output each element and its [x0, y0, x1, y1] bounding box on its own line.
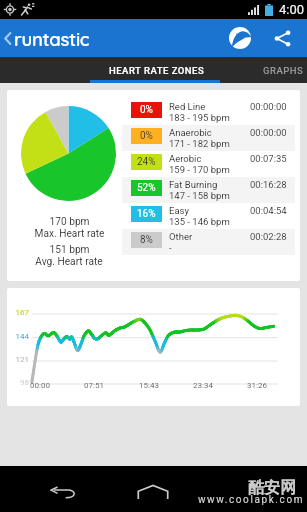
staticText: 16% — [137, 208, 156, 220]
staticText: 159 - 170 bpm — [169, 164, 230, 175]
button[interactable]: Back — [3, 27, 90, 50]
staticText: 00:00:00 — [250, 127, 287, 138]
staticText: 8% — [140, 234, 153, 246]
staticText: 0% — [140, 130, 153, 142]
staticText: 00:00 — [30, 381, 50, 390]
staticText: 00:16:28 — [250, 179, 287, 190]
staticText: 171 - 182 bpm — [169, 138, 230, 149]
staticText: 135 - 146 bpm — [169, 216, 230, 227]
staticText: 98 — [12, 378, 29, 387]
staticText: 15:43 — [139, 381, 159, 390]
staticText: runtastic — [14, 27, 90, 50]
button[interactable]: Home — [133, 480, 173, 504]
staticText: 144 — [12, 332, 29, 341]
staticText: 31:26 — [247, 381, 267, 390]
staticText: 00:04:54 — [250, 205, 287, 216]
staticText: 52% — [137, 182, 156, 194]
staticText: Easy — [169, 205, 189, 216]
staticText: 00:00:00 — [250, 101, 287, 112]
staticText: 0% — [140, 104, 153, 116]
staticText: 170 bpm — [49, 216, 90, 228]
staticText: 167 — [12, 308, 29, 317]
button[interactable]: 0% — [122, 125, 295, 151]
button[interactable]: 16% — [122, 203, 295, 229]
button[interactable]: GRAPHS — [220, 57, 307, 83]
staticText: 4:00 — [279, 2, 305, 17]
button[interactable]: 52% — [122, 177, 295, 203]
staticText: - — [169, 242, 172, 253]
button[interactable]: HEART RATE ZONES — [90, 57, 220, 83]
staticText: GRAPHS — [263, 65, 304, 76]
other: Back — [3, 30, 12, 47]
staticText: 183 - 195 bpm — [169, 112, 230, 123]
button[interactable]: Back — [43, 480, 83, 504]
staticText: Avg. Heart rate — [35, 256, 103, 268]
staticText: Red Line — [169, 101, 206, 112]
staticText: 07:51 — [84, 381, 104, 390]
staticText: 121 — [12, 355, 29, 364]
staticText: 151 bpm — [49, 244, 90, 256]
staticText: 24% — [137, 156, 156, 168]
staticText: HEART RATE ZONES — [109, 65, 205, 76]
staticText: 00:07:35 — [250, 153, 287, 164]
staticText: Fat Burning — [169, 179, 218, 190]
staticText: 147 - 158 bpm — [169, 190, 230, 201]
staticText: 00:02:28 — [250, 231, 287, 242]
button[interactable]: Runtastic — [224, 22, 256, 54]
button[interactable]: Share — [266, 22, 298, 54]
staticText: Other — [169, 231, 193, 242]
button[interactable]: 8% — [122, 229, 295, 255]
staticText: Anaerobic — [169, 127, 212, 138]
staticText: Aerobic — [169, 153, 202, 164]
button[interactable]: 0% — [122, 99, 295, 125]
staticText: 23:34 — [193, 381, 213, 390]
button[interactable]: 24% — [122, 151, 295, 177]
staticText: 酷安网 — [248, 478, 296, 498]
staticText: www.coolapk.com — [198, 494, 305, 506]
staticText: Max. Heart rate — [34, 228, 105, 240]
